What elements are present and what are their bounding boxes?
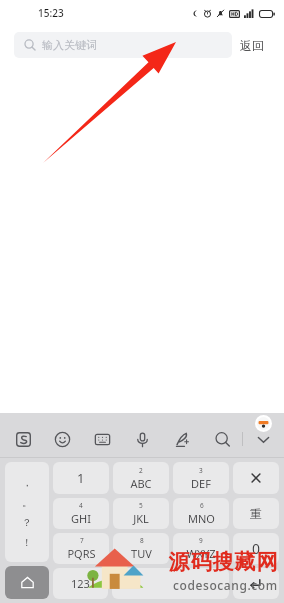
button[interactable]: 8 (113, 533, 169, 564)
staticText: 2 (139, 466, 143, 475)
staticText: 8 (140, 536, 144, 545)
button[interactable]: Voice input (129, 426, 155, 452)
button[interactable]: 4 (53, 498, 109, 529)
button[interactable]: Collapse keyboard (250, 426, 276, 452)
staticText: WXYZ (186, 546, 216, 561)
button[interactable]: 返回 (232, 34, 272, 57)
button[interactable]: 1 (53, 462, 109, 494)
staticText: 输入关键词 (42, 38, 97, 52)
button[interactable]: 3 (173, 462, 229, 494)
staticText: 9 (199, 536, 203, 545)
staticText: 源码搜藏网 (168, 549, 278, 575)
staticText: ABC (130, 476, 152, 491)
staticText: GHI (71, 511, 91, 526)
staticText: TUV (131, 546, 152, 561)
staticText: 6 (200, 501, 204, 510)
staticText: 123 (71, 576, 90, 591)
button[interactable]: 重 (233, 498, 279, 529)
button[interactable]: Keyboard layout (89, 426, 115, 452)
staticText: codesocang.com (173, 577, 278, 593)
button[interactable]: 9 (173, 533, 229, 564)
staticText: 0 (252, 539, 261, 558)
button[interactable]: Home (5, 566, 49, 599)
button[interactable]: 5 (113, 498, 169, 529)
button[interactable]: 123 (53, 568, 108, 599)
button[interactable]: 0 (233, 533, 279, 564)
button[interactable]: Assistant avatar (255, 415, 272, 432)
staticText: 重 (250, 506, 262, 521)
staticText: ！ (22, 536, 32, 549)
staticText: DEF (191, 476, 211, 491)
button[interactable]: Sogou input (10, 426, 36, 452)
button[interactable]: ， (5, 462, 49, 562)
staticText: ？ (22, 516, 32, 529)
button[interactable]: Backspace (233, 462, 279, 494)
staticText: 3 (199, 466, 203, 475)
button[interactable]: 2 (113, 462, 169, 494)
staticText: MNO (188, 511, 215, 526)
button[interactable] (112, 568, 229, 599)
button[interactable]: Handwriting (169, 426, 195, 452)
staticText: 5 (139, 501, 143, 510)
staticText: 7 (80, 536, 84, 545)
button[interactable]: Emoji (49, 426, 75, 452)
button[interactable]: Enter (233, 568, 279, 599)
staticText: 4 (79, 501, 83, 510)
staticText: JKL (133, 511, 149, 526)
button[interactable]: Search (209, 426, 235, 452)
staticText: 1 (77, 469, 85, 487)
button[interactable]: 6 (173, 498, 229, 529)
button[interactable]: 输入关键词 (14, 32, 232, 58)
staticText: 返回 (240, 38, 264, 53)
button[interactable]: 7 (53, 533, 109, 564)
staticText: 。 (22, 496, 32, 509)
staticText: 15:23 (38, 6, 64, 20)
staticText: PQRS (67, 546, 96, 561)
staticText: ， (22, 476, 32, 489)
